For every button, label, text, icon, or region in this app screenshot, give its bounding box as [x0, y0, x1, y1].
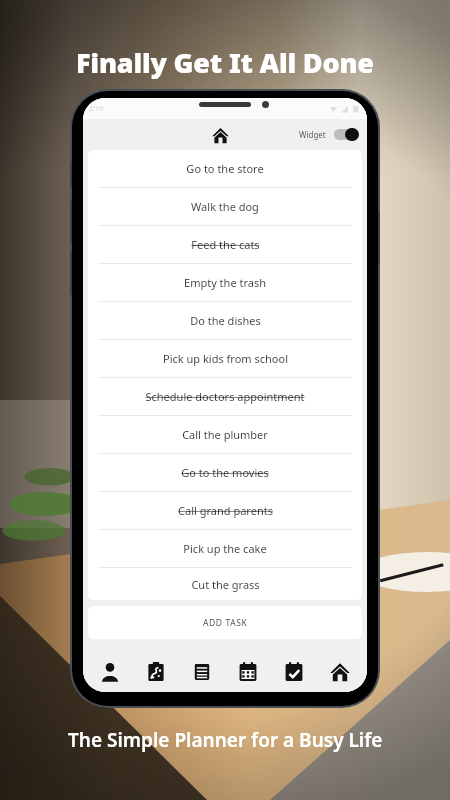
staticText: Empty the trash	[184, 275, 266, 290]
staticText: The Simple Planner for a Busy Life	[68, 727, 383, 753]
button[interactable]: Feed the cats	[88, 226, 362, 263]
button[interactable]: Cut the grass	[88, 568, 362, 600]
button[interactable]: Home	[321, 653, 359, 691]
button[interactable]: Lists	[183, 653, 221, 691]
button[interactable]: Home	[205, 120, 235, 150]
button[interactable]: Pick up the cake	[88, 530, 362, 567]
button[interactable]: Go to the movies	[88, 454, 362, 491]
staticText: Do the dishes	[190, 313, 261, 328]
staticText: Widget	[299, 129, 326, 140]
staticText: Call grand parents	[178, 503, 273, 518]
staticText: Feed the cats	[191, 237, 260, 252]
button[interactable]: Agenda	[275, 653, 313, 691]
staticText: Pick up kids from school	[163, 351, 288, 366]
button[interactable]: Walk the dog	[88, 188, 362, 225]
staticText: Pick up the cake	[183, 541, 267, 556]
button[interactable]: Widget	[299, 128, 367, 141]
button[interactable]: Schedule doctors appointment	[88, 378, 362, 415]
button[interactable]: Pick up kids from school	[88, 340, 362, 377]
button[interactable]: Do the dishes	[88, 302, 362, 339]
staticText: Cut the grass	[191, 577, 260, 592]
staticText: Go to the movies	[181, 465, 269, 480]
staticText: 3:19	[89, 104, 103, 114]
button[interactable]: Calendar	[229, 653, 267, 691]
button[interactable]: Empty the trash	[88, 264, 362, 301]
staticText: ADD TASK	[203, 617, 248, 629]
button[interactable]: Call the plumber	[88, 416, 362, 453]
button[interactable]: Call grand parents	[88, 492, 362, 529]
staticText: Go to the store	[186, 161, 264, 176]
staticText: Call the plumber	[182, 427, 268, 442]
button[interactable]: Profile	[91, 653, 129, 691]
button[interactable]: Go to the store	[88, 150, 362, 187]
button[interactable]: Notes	[137, 653, 175, 691]
staticText: Finally Get It All Done	[76, 44, 374, 81]
staticText: Walk the dog	[191, 199, 259, 214]
button[interactable]: ADD TASK	[88, 606, 362, 639]
staticText: Schedule doctors appointment	[145, 389, 305, 404]
